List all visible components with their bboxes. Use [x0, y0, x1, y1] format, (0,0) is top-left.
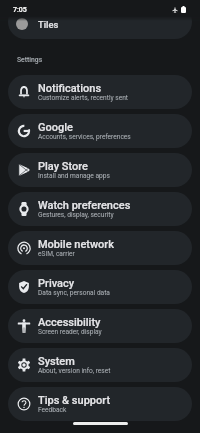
staticText: Tips & support — [38, 394, 111, 407]
staticText: Gestures, display, security — [38, 211, 114, 219]
button[interactable]: System — [8, 348, 192, 382]
staticText: Privacy — [38, 277, 75, 290]
button[interactable]: Accessibility — [8, 309, 192, 343]
staticText: Customize alerts, recently sent — [38, 94, 128, 102]
staticText: System — [38, 355, 75, 368]
button[interactable]: Watch preferences — [8, 192, 192, 226]
button[interactable]: Mobile network — [8, 231, 192, 265]
staticText: 7:05 — [13, 6, 27, 14]
button[interactable]: Google — [8, 114, 192, 148]
button[interactable]: Notifications — [8, 75, 192, 109]
staticText: Accessibility — [38, 316, 101, 329]
staticText: eSIM, carrier — [38, 250, 75, 258]
staticText: Notifications — [38, 82, 102, 95]
button[interactable]: Privacy — [8, 270, 192, 304]
button[interactable]: Play Store — [8, 153, 192, 187]
staticText: Settings — [17, 56, 43, 64]
staticText: Screen reader, display — [38, 328, 102, 336]
staticText: Tiles — [38, 19, 59, 30]
staticText: About, version info, reset — [38, 367, 111, 375]
staticText: Install and manage apps — [38, 172, 110, 180]
button[interactable]: Tips & support — [8, 387, 192, 421]
staticText: Data sync, personal data — [38, 289, 110, 297]
staticText: Play Store — [38, 160, 88, 173]
staticText: Mobile network — [38, 238, 114, 251]
staticText: Feedback — [38, 406, 67, 414]
staticText: Accounts, services, preferences — [38, 133, 131, 141]
staticText: Google — [38, 121, 73, 134]
staticText: Watch preferences — [38, 199, 131, 212]
button[interactable]: Tiles — [8, 5, 192, 39]
